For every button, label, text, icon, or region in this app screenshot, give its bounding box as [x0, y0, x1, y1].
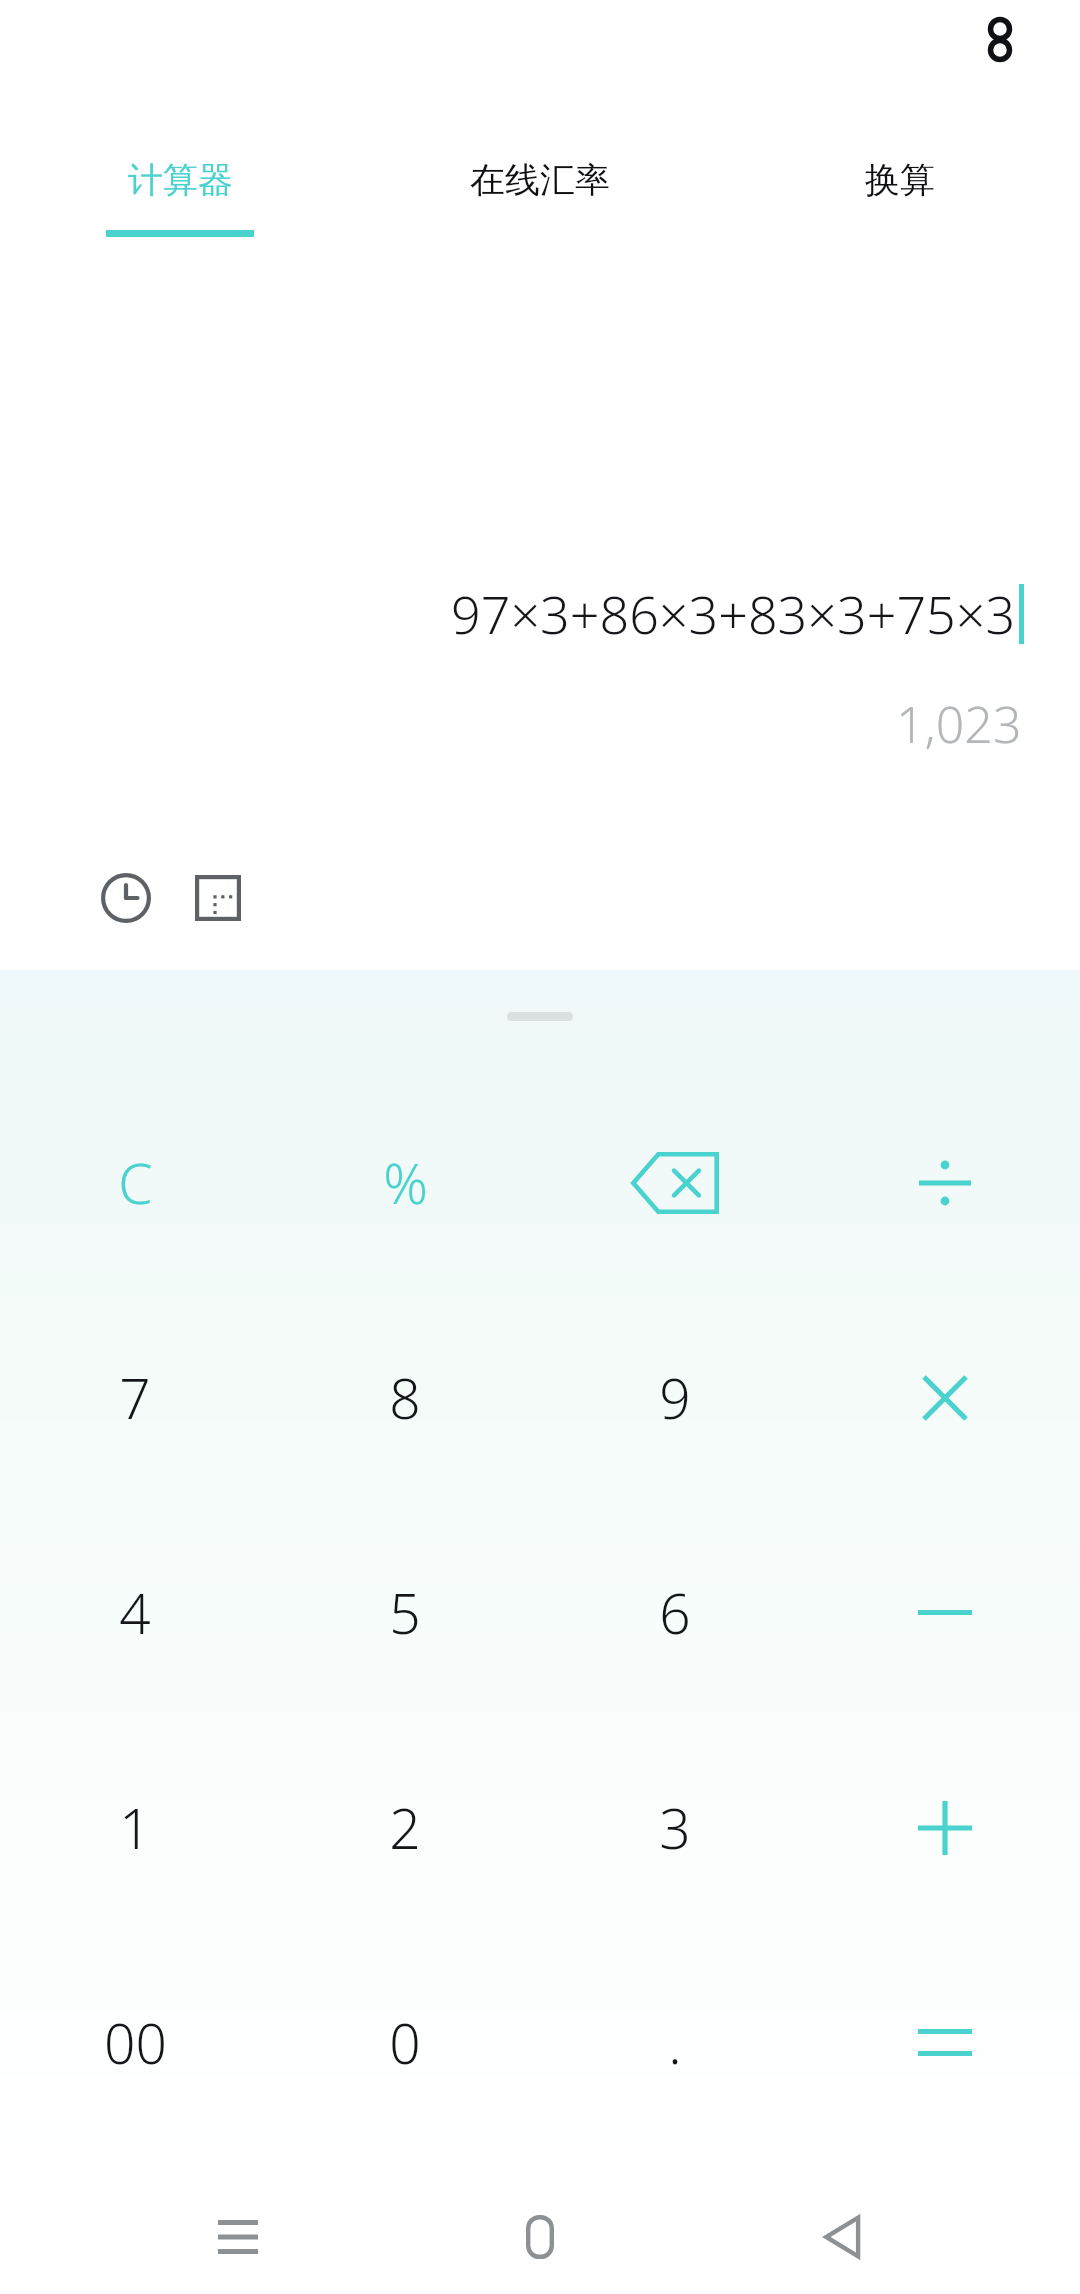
staticText: 00	[104, 2005, 167, 2080]
button[interactable]: 计算器	[0, 158, 360, 278]
button[interactable]: 换算	[720, 158, 1080, 278]
staticText: .	[668, 2005, 682, 2080]
button[interactable]: C	[0, 1075, 270, 1290]
button[interactable]: 在线汇率	[360, 158, 720, 278]
button[interactable]: 4	[0, 1505, 270, 1720]
button[interactable]: .	[540, 1935, 810, 2150]
staticText: 7	[119, 1360, 151, 1435]
staticText: 6	[659, 1575, 691, 1650]
staticText: 5	[389, 1575, 421, 1650]
button[interactable]: 0	[270, 1935, 540, 2150]
staticText: 1	[119, 1790, 151, 1865]
staticText: 换算	[865, 158, 935, 202]
button[interactable]: 9	[540, 1290, 810, 1505]
button[interactable]: Scientific mode	[178, 858, 258, 938]
staticText: 9	[659, 1360, 691, 1435]
button[interactable]: 7	[0, 1290, 270, 1505]
staticText: 97×3+86×3+83×3+75×3	[451, 578, 1016, 649]
button[interactable]: 5	[270, 1505, 540, 1720]
staticText: 1,023	[896, 690, 1022, 758]
staticText: 计算器	[128, 158, 233, 202]
staticText: 0	[389, 2005, 421, 2080]
button[interactable]: History	[86, 858, 166, 938]
button[interactable]: 00	[0, 1935, 270, 2150]
button[interactable]: Home	[475, 2180, 605, 2294]
button[interactable]: Plus	[810, 1720, 1080, 1935]
button[interactable]: Backspace	[540, 1075, 810, 1290]
staticText: 2	[389, 1790, 421, 1865]
button[interactable]: Equals	[810, 1935, 1080, 2150]
button[interactable]: 6	[540, 1505, 810, 1720]
staticText: 8	[389, 1360, 421, 1435]
button[interactable]: 3	[540, 1720, 810, 1935]
staticText: %	[383, 1145, 428, 1220]
button[interactable]: 2	[270, 1720, 540, 1935]
button[interactable]: %	[270, 1075, 540, 1290]
button[interactable]: Minus	[810, 1505, 1080, 1720]
button[interactable]: 1	[0, 1720, 270, 1935]
button[interactable]: More options	[950, 2, 1050, 94]
staticText: C	[118, 1145, 153, 1220]
button[interactable]: Recents	[173, 2180, 303, 2294]
button[interactable]: Divide	[810, 1075, 1080, 1290]
button[interactable]: Back	[778, 2180, 908, 2294]
staticText: 4	[119, 1575, 151, 1650]
button[interactable]: Multiply	[810, 1290, 1080, 1505]
staticText: 在线汇率	[470, 158, 610, 202]
button[interactable]: 8	[270, 1290, 540, 1505]
staticText: 3	[659, 1790, 691, 1865]
